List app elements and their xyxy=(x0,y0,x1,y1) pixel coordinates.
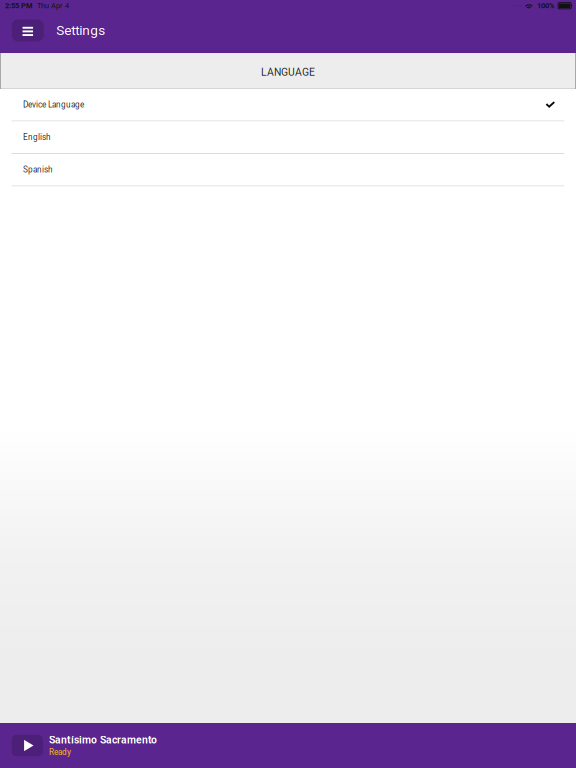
staticText: Device Language xyxy=(23,100,84,110)
staticText: English xyxy=(23,132,51,142)
staticText: Settings xyxy=(56,22,105,38)
staticText: Ready xyxy=(49,747,71,757)
staticText: Santísimo Sacramento xyxy=(49,734,157,746)
button[interactable]: English xyxy=(0,121,576,154)
button[interactable]: Spanish xyxy=(0,154,576,186)
staticText: LANGUAGE xyxy=(261,66,315,78)
button[interactable]: Menu xyxy=(12,19,44,41)
staticText: Spanish xyxy=(23,165,53,175)
button[interactable]: Device Language xyxy=(0,89,576,121)
staticText: Thu Apr 4 xyxy=(37,1,69,10)
button[interactable]: Play xyxy=(12,735,43,756)
staticText: 2:55 PM xyxy=(5,1,33,10)
staticText: 100% xyxy=(537,1,555,10)
